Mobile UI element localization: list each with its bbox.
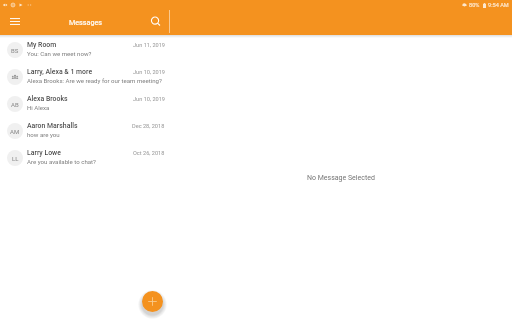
staticText: AM [10,128,20,135]
button[interactable]: New message [142,291,163,312]
button[interactable]: Larry, Alexa & 1 more [0,63,170,90]
staticText: Hi Alexa [27,104,50,111]
staticText: Jun 11, 2019 [133,42,165,49]
staticText: You: Can we meet now? [27,50,92,57]
staticText: Oct 26, 2018 [133,150,165,157]
button[interactable]: BS [0,36,170,63]
staticText: Larry Lowe [27,149,130,157]
button[interactable]: Search [143,10,169,33]
staticText: My Room [27,41,130,49]
staticText: 9:54 AM [488,2,509,9]
staticText: Larry, Alexa & 1 more [27,68,130,76]
staticText: Dec 28, 2018 [132,123,165,130]
staticText: Jun 10, 2019 [133,69,165,76]
staticText: LL [12,155,19,162]
staticText: Alexa Brooks [27,95,130,103]
staticText: Aaron Marshalls [27,122,129,130]
staticText: Are you available to chat? [27,158,96,165]
staticText: how are you [27,131,60,138]
button[interactable]: Menu [0,10,29,33]
staticText: AB [11,101,19,108]
staticText: 80% [469,2,480,9]
button[interactable]: AB [0,90,170,117]
button[interactable]: AM [0,117,170,144]
staticText: Alexa Brooks: Are we ready for our team … [27,77,162,84]
staticText: Jun 10, 2019 [133,96,165,103]
staticText: Messages [69,18,102,26]
button[interactable]: LL [0,144,170,171]
staticText: BS [11,47,19,54]
staticText: No Message Selected [307,174,375,182]
